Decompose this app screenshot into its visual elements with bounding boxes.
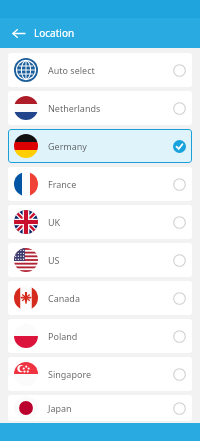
button[interactable]: UK [8,205,192,239]
staticText: Poland [48,330,78,342]
staticText: US [48,254,60,266]
staticText: France [48,178,77,190]
button[interactable]: Poland [8,319,192,353]
button[interactable]: Japan [8,395,192,421]
staticText: Germany [48,140,87,152]
button[interactable]: Auto select [8,53,192,87]
staticText: Location [34,26,75,40]
staticText: UK [48,216,61,228]
button[interactable]: France [8,167,192,201]
staticText: Auto select [48,64,95,76]
staticText: Japan [48,402,72,414]
staticText: Canada [48,292,80,304]
button[interactable]: Germany [8,129,192,163]
button[interactable]: Back [8,23,28,43]
staticText: Netherlands [48,102,101,114]
button[interactable]: Singapore [8,357,192,391]
button[interactable]: US [8,243,192,277]
button[interactable]: Canada [8,281,192,315]
button[interactable]: Netherlands [8,91,192,125]
staticText: Singapore [48,368,92,380]
